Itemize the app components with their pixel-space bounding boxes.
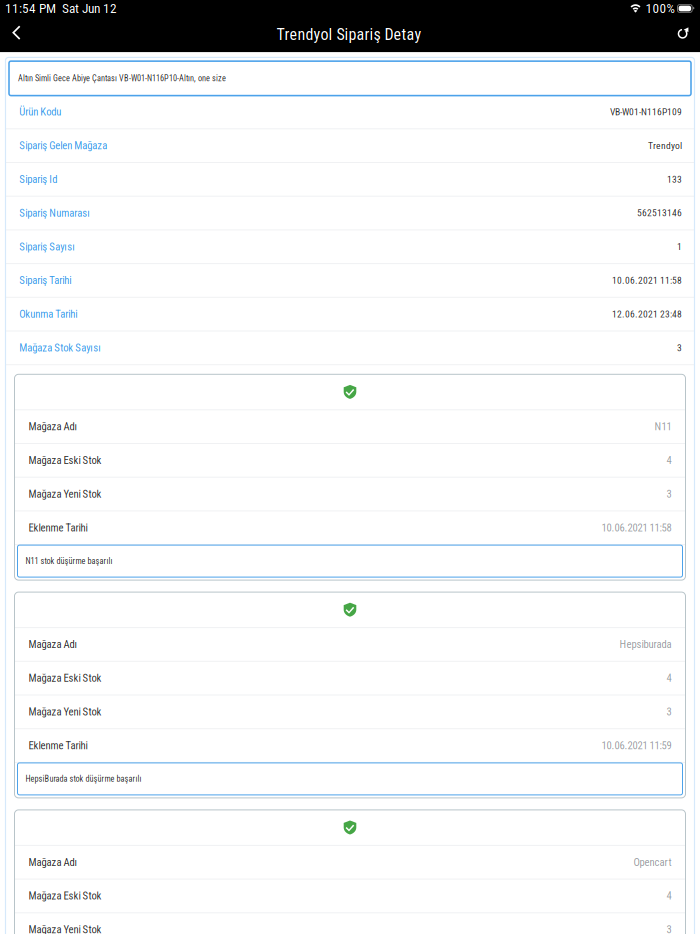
button[interactable]: Eklenme Tarihi bbox=[14, 729, 685, 762]
staticText: Sipariş Gelen Mağaza bbox=[19, 139, 107, 152]
button[interactable]: Sipariş Sayısı bbox=[5, 230, 694, 263]
staticText: 3 bbox=[666, 488, 671, 500]
button[interactable]: Mağaza Yeni Stok bbox=[14, 478, 685, 510]
staticText: 10.06.2021 11:58 bbox=[601, 521, 671, 534]
staticText: 562513146 bbox=[637, 207, 682, 219]
button[interactable]: Back bbox=[1, 17, 31, 52]
staticText: Mağaza Stok Sayısı bbox=[19, 342, 101, 354]
staticText: Mağaza Eski Stok bbox=[28, 672, 101, 684]
button[interactable]: Mağaza Yeni Stok bbox=[14, 695, 685, 728]
button[interactable]: Sipariş Tarihi bbox=[5, 264, 694, 297]
staticText: Mağaza Eski Stok bbox=[28, 454, 101, 467]
button[interactable]: Mağaza Eski Stok bbox=[14, 880, 685, 912]
button[interactable]: Sipariş Gelen Mağaza bbox=[5, 129, 694, 162]
button[interactable]: Okunma Tarihi bbox=[5, 298, 694, 330]
button[interactable]: Mağaza Eski Stok bbox=[14, 662, 685, 694]
staticText: Sipariş Sayısı bbox=[19, 240, 75, 253]
staticText: Mağaza Adı bbox=[28, 856, 77, 868]
staticText: Mağaza Yeni Stok bbox=[28, 488, 101, 500]
button[interactable]: Eklenme Tarihi bbox=[14, 511, 685, 544]
staticText: Okunma Tarihi bbox=[19, 308, 77, 320]
button[interactable]: Refresh bbox=[667, 17, 699, 52]
staticText: HepsiBurada stok düşürme başarılı bbox=[25, 774, 141, 784]
staticText: Opencart bbox=[633, 856, 671, 868]
staticText: Eklenme Tarihi bbox=[28, 739, 87, 752]
staticText: 10.06.2021 11:58 bbox=[612, 275, 682, 286]
staticText: 3 bbox=[666, 706, 671, 718]
staticText: 100% bbox=[645, 1, 674, 16]
staticText: 10.06.2021 11:59 bbox=[601, 739, 671, 752]
button[interactable]: Mağaza Adı bbox=[14, 628, 685, 661]
staticText: Hepsiburada bbox=[619, 638, 671, 651]
staticText: 4 bbox=[666, 454, 671, 467]
staticText: Mağaza Adı bbox=[28, 638, 77, 651]
staticText: N11 bbox=[654, 420, 671, 433]
staticText: Mağaza Adı bbox=[28, 420, 77, 433]
staticText: Mağaza Eski Stok bbox=[28, 890, 101, 902]
staticText: Sipariş Tarihi bbox=[19, 274, 71, 287]
staticText: 12.06.2021 23:48 bbox=[612, 308, 682, 320]
staticText: Trendyol bbox=[648, 140, 682, 151]
staticText: 4 bbox=[666, 890, 671, 902]
staticText: N11 stok düşürme başarılı bbox=[25, 556, 112, 566]
staticText: Mağaza Yeni Stok bbox=[28, 923, 101, 934]
staticText: 3 bbox=[666, 923, 671, 934]
staticText: Ürün Kodu bbox=[19, 106, 61, 118]
staticText: Sat Jun 12 bbox=[56, 1, 117, 16]
staticText: Trendyol Sipariş Detay bbox=[276, 25, 421, 44]
staticText: 3 bbox=[677, 342, 682, 353]
button[interactable]: Mağaza Adı bbox=[14, 846, 685, 879]
staticText: Altın Simli Gece Abiye Çantası VB-W01-N1… bbox=[18, 73, 226, 83]
button[interactable]: Mağaza Yeni Stok bbox=[14, 913, 685, 934]
staticText: 4 bbox=[666, 672, 671, 684]
button[interactable]: Mağaza Stok Sayısı bbox=[5, 331, 694, 364]
staticText: VB-W01-N116P109 bbox=[610, 106, 682, 118]
staticText: Sipariş Numarası bbox=[19, 207, 90, 219]
staticText: Mağaza Yeni Stok bbox=[28, 706, 101, 718]
button[interactable]: Ürün Kodu bbox=[5, 96, 694, 128]
staticText: 11:54 PM bbox=[5, 1, 56, 16]
staticText: Eklenme Tarihi bbox=[28, 521, 87, 534]
button[interactable]: Sipariş Id bbox=[5, 163, 694, 196]
button[interactable]: Mağaza Adı bbox=[14, 410, 685, 443]
staticText: 133 bbox=[667, 174, 682, 185]
button[interactable]: Sipariş Numarası bbox=[5, 197, 694, 229]
button[interactable]: Mağaza Eski Stok bbox=[14, 444, 685, 477]
staticText: 1 bbox=[677, 241, 682, 252]
staticText: Sipariş Id bbox=[19, 173, 57, 186]
